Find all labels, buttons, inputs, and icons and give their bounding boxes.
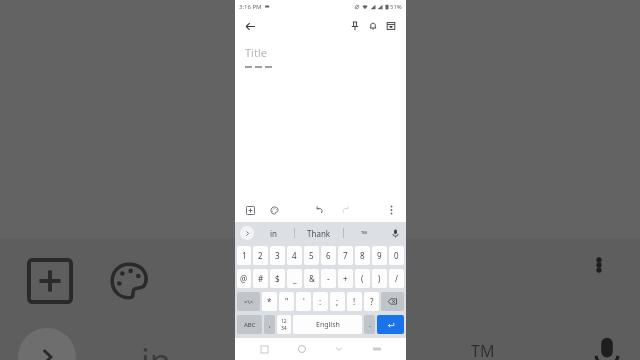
staticText: 2 [258,250,263,261]
staticText: ; [336,296,339,307]
button[interactable]: @ [237,269,251,288]
button[interactable]: 4 [287,246,302,265]
button[interactable]: Switch keyboard [368,340,386,358]
button[interactable]: Color palette [266,202,282,218]
staticText: 12 [281,318,287,325]
staticText: 0 [394,250,399,261]
button[interactable]: Expand toolbar [240,226,254,240]
button[interactable]: 7 [338,246,353,265]
staticText: Thank [307,228,331,239]
button[interactable]: ; [330,292,345,311]
button[interactable]: ! [347,292,362,311]
staticText: ™ [361,228,368,239]
button[interactable]: - [321,269,336,288]
button[interactable]: 1 [237,246,251,265]
button[interactable]: Enter [377,315,404,334]
button[interactable]: Thank [295,222,343,244]
staticText: 8 [360,250,365,261]
button[interactable]: : [313,292,328,311]
button[interactable]: " [279,292,294,311]
staticText: 6 [326,250,331,261]
button[interactable]: 5 [304,246,319,265]
button[interactable]: / [389,269,404,288]
staticText: - [327,273,330,284]
staticText: * [267,296,272,307]
staticText: / [395,273,398,284]
button[interactable]: * [262,292,277,311]
staticText: ? [370,296,374,307]
staticText: English [316,320,340,330]
button[interactable]: 2 [253,246,268,265]
button[interactable]: $ [270,269,285,288]
button[interactable]: _ [287,269,302,288]
staticText: 7 [343,250,348,261]
staticText: ( [361,273,364,284]
button[interactable]: Back [241,17,259,35]
button[interactable]: Undo [311,202,327,218]
button[interactable]: Archive [382,17,400,35]
staticText: " [285,296,289,307]
staticText: in [270,228,278,239]
button[interactable]: Voice input [384,222,406,244]
staticText: 51% [390,3,402,11]
button[interactable]: ( [355,269,370,288]
button[interactable]: ABC [237,315,262,334]
staticText: . [369,320,371,330]
button[interactable]: Hide keyboard [330,340,348,358]
button[interactable]: ) [372,269,387,288]
staticText: =\< [244,298,254,306]
button[interactable]: ' [296,292,311,311]
button[interactable]: # [253,269,268,288]
staticText: 3:16 PM [239,3,262,11]
staticText: in [141,338,171,360]
button[interactable]: Home [293,340,311,358]
button[interactable]: =\< [237,292,260,311]
staticText: Title [245,45,267,60]
button[interactable]: Recents [255,340,273,358]
staticText: , [269,320,271,330]
button[interactable]: Redo [337,202,353,218]
button[interactable]: 6 [321,246,336,265]
staticText: 9 [377,250,382,261]
button[interactable]: + [338,269,353,288]
button[interactable]: Pin [346,17,364,35]
staticText: 3 [275,250,280,261]
staticText: 5 [309,250,314,261]
staticText: ABC [244,321,256,329]
staticText: @ [240,273,248,284]
staticText: TM [471,340,495,360]
button[interactable]: Add [242,202,258,218]
staticText: ) [378,273,381,284]
button[interactable]: ™ [344,222,384,244]
button[interactable]: Reminder [364,17,382,35]
staticText: ! [353,296,356,307]
button[interactable]: Backspace [381,292,404,311]
button[interactable]: in [254,222,294,244]
button[interactable]: More options [383,202,399,218]
button[interactable]: English [293,315,362,334]
staticText: 4 [292,250,297,261]
staticText: # [258,273,264,284]
button[interactable]: . [364,315,375,334]
staticText: ' [303,296,305,307]
button[interactable]: Numbers [277,315,291,334]
button[interactable]: & [304,269,319,288]
staticText: $ [275,273,280,284]
button[interactable]: ? [364,292,379,311]
button[interactable]: , [264,315,275,334]
button[interactable]: 3 [270,246,285,265]
staticText: _ [293,273,297,284]
staticText: 1 [242,250,247,261]
staticText: + [343,273,348,284]
button[interactable]: 9 [372,246,387,265]
staticText: 34 [281,325,287,332]
button[interactable]: 8 [355,246,370,265]
staticText: : [319,296,322,307]
button[interactable]: 0 [389,246,404,265]
staticText: & [309,273,315,284]
